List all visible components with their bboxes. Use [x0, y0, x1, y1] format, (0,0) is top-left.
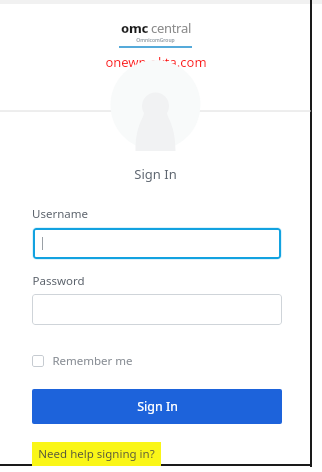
button[interactable]: Sign In: [32, 389, 282, 424]
button[interactable]: [32, 227, 282, 260]
staticText: OmnicomGroup: [136, 37, 175, 44]
staticText: onewp.okta.com: [105, 53, 207, 71]
staticText: Remember me: [52, 353, 133, 369]
staticText: Sign In: [134, 165, 177, 183]
staticText: Need help signing in?: [38, 446, 155, 462]
staticText: Sign In: [137, 398, 178, 415]
button[interactable]: Need help signing in?: [32, 442, 161, 466]
staticText: Username: [32, 206, 88, 222]
button[interactable]: Password field: [32, 294, 282, 325]
staticText: Password: [32, 273, 85, 289]
staticText: central: [151, 19, 191, 37]
button[interactable]: Remember me: [32, 351, 133, 371]
staticText: omc: [121, 19, 148, 37]
